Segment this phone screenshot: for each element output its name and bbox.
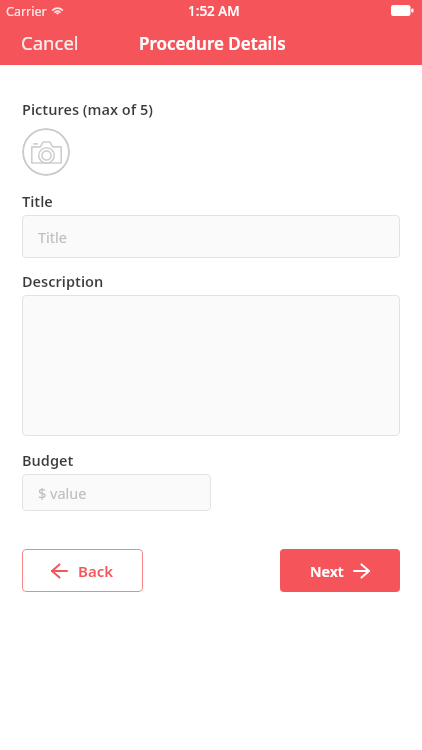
staticText: 1:52 AM [188,2,240,20]
staticText: Budget [22,450,74,470]
button[interactable]: Back [22,549,143,592]
staticText: $ value [38,483,87,503]
button[interactable]: Add picture [22,128,70,176]
button[interactable] [22,295,400,436]
staticText: Back [78,561,114,581]
staticText: Next [310,561,344,581]
button[interactable]: Next [280,549,400,592]
button[interactable]: Title [22,215,400,258]
staticText: Procedure Details [139,32,286,55]
staticText: Title [38,227,67,247]
staticText: Title [22,191,53,211]
staticText: Carrier [6,3,47,20]
button[interactable]: Cancel [0,22,91,63]
staticText: Description [22,271,104,291]
staticText: Pictures (max of 5) [22,99,153,119]
button[interactable]: $ value [22,474,211,511]
staticText: Cancel [21,30,79,55]
